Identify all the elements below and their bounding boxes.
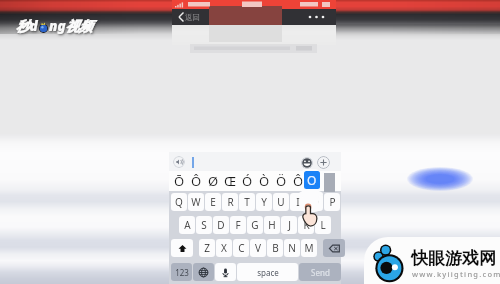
button[interactable]: O [304, 171, 320, 189]
button[interactable]: Ö [273, 171, 290, 191]
button[interactable]: V [250, 239, 266, 257]
staticText: T [244, 195, 250, 209]
button[interactable]: Z [199, 239, 215, 257]
staticText: Y [261, 195, 267, 209]
button[interactable]: 123 [171, 263, 192, 281]
button[interactable]: S [196, 216, 212, 234]
button[interactable]: Ō [171, 171, 188, 191]
staticText: 秒d [16, 17, 38, 35]
staticText: Ô [191, 172, 202, 190]
button[interactable]: K [298, 216, 314, 234]
staticText: 123 [175, 267, 189, 278]
staticText: F [235, 218, 241, 232]
staticText: K [303, 218, 310, 232]
staticText: Ò [259, 172, 270, 190]
button[interactable]: O [307, 193, 323, 211]
staticText: ng视频 [49, 17, 93, 35]
button[interactable]: T [239, 193, 255, 211]
button[interactable]: D [213, 216, 229, 234]
button[interactable]: Ô [188, 171, 205, 191]
button[interactable]: U [273, 193, 289, 211]
staticText: I [296, 195, 300, 209]
staticText: C [238, 241, 245, 255]
staticText: P [329, 195, 336, 209]
button[interactable]: Voice input [173, 156, 185, 168]
staticText: O [307, 172, 317, 188]
button[interactable]: C [233, 239, 249, 257]
button[interactable]: G [247, 216, 263, 234]
button[interactable]: E [205, 193, 221, 211]
staticText: E [210, 195, 216, 209]
staticText: Ō [174, 172, 185, 190]
button[interactable]: space [237, 263, 298, 281]
button[interactable]: Switch language [193, 263, 214, 281]
button[interactable]: Q [171, 193, 187, 211]
button[interactable]: Backspace [323, 239, 345, 257]
staticText: Q [175, 195, 183, 209]
button[interactable]: H [264, 216, 280, 234]
staticText: V [255, 241, 261, 255]
staticText: H [268, 218, 276, 232]
staticText: J [288, 218, 291, 232]
button[interactable]: Ô [290, 171, 307, 191]
button[interactable]: N [284, 239, 300, 257]
staticText: www.kyiigting.com [412, 269, 500, 279]
staticText: Œ [224, 172, 237, 190]
button[interactable]: Ò [256, 171, 273, 191]
staticText: Ó [242, 172, 253, 190]
staticText: 返回 [185, 13, 200, 22]
button[interactable]: Ø [205, 171, 222, 191]
staticText: A [184, 218, 191, 232]
button[interactable]: Y [256, 193, 272, 211]
staticText: 快眼游戏网 [411, 248, 496, 269]
staticText: B [272, 241, 279, 255]
staticText: Ô [293, 172, 304, 190]
staticText: S [201, 218, 207, 232]
button[interactable]: Shift [171, 239, 193, 257]
staticText: N [288, 241, 296, 255]
button[interactable]: Ó [239, 171, 256, 191]
staticText: X [221, 241, 227, 255]
staticText: space [257, 267, 279, 278]
button[interactable]: I [290, 193, 306, 211]
staticText: L [320, 218, 326, 232]
staticText: Send [311, 267, 330, 278]
staticText: Z [204, 241, 210, 255]
button[interactable]: L [315, 216, 331, 234]
button[interactable]: Send [299, 263, 341, 281]
button[interactable]: Emoji [301, 157, 313, 169]
button[interactable]: Microphone [215, 263, 236, 281]
staticText: W [191, 195, 201, 209]
button[interactable]: F [230, 216, 246, 234]
staticText: Ö [276, 172, 287, 190]
staticText: Ø [208, 172, 219, 190]
button[interactable]: More options [305, 9, 330, 25]
staticText: O [311, 195, 319, 209]
button[interactable]: X [216, 239, 232, 257]
button[interactable]: P [324, 193, 340, 211]
button[interactable]: A [179, 216, 195, 234]
staticText: G [251, 218, 259, 232]
button[interactable]: B [267, 239, 283, 257]
button[interactable]: W [188, 193, 204, 211]
button[interactable]: J [281, 216, 297, 234]
staticText: U [277, 195, 285, 209]
button[interactable]: Back [172, 9, 212, 25]
staticText: M [304, 241, 314, 255]
button[interactable]: Add [317, 156, 330, 169]
button[interactable]: Œ [222, 171, 239, 191]
button[interactable]: M [301, 239, 317, 257]
staticText: R [227, 195, 234, 209]
button[interactable]: R [222, 193, 238, 211]
staticText: D [217, 218, 225, 232]
